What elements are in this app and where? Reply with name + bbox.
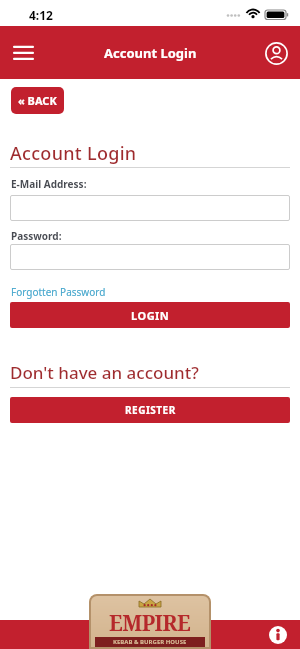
staticText: EMPIRE: [109, 609, 191, 638]
staticText: E-Mail Address:: [11, 177, 87, 191]
button[interactable]: Forgotten Password: [11, 285, 106, 299]
button[interactable]: [10, 244, 290, 270]
staticText: REGISTER: [125, 403, 176, 417]
staticText: « BACK: [18, 93, 57, 108]
staticText: 4:12: [29, 7, 53, 23]
staticText: Password:: [11, 229, 62, 243]
button[interactable]: REGISTER: [10, 397, 290, 423]
staticText: Account Login: [104, 44, 197, 62]
button[interactable]: [10, 195, 290, 221]
button[interactable]: [262, 39, 290, 67]
button[interactable]: EMPIRE: [89, 594, 211, 649]
staticText: KEBAB & BURGER HOUSE: [113, 638, 187, 646]
staticText: Account Login: [10, 141, 137, 166]
staticText: Don't have an account?: [10, 361, 199, 384]
staticText: LOGIN: [131, 308, 170, 323]
button[interactable]: LOGIN: [10, 302, 290, 328]
button[interactable]: [6, 36, 40, 70]
button[interactable]: [269, 626, 287, 644]
button[interactable]: « BACK: [11, 87, 64, 114]
